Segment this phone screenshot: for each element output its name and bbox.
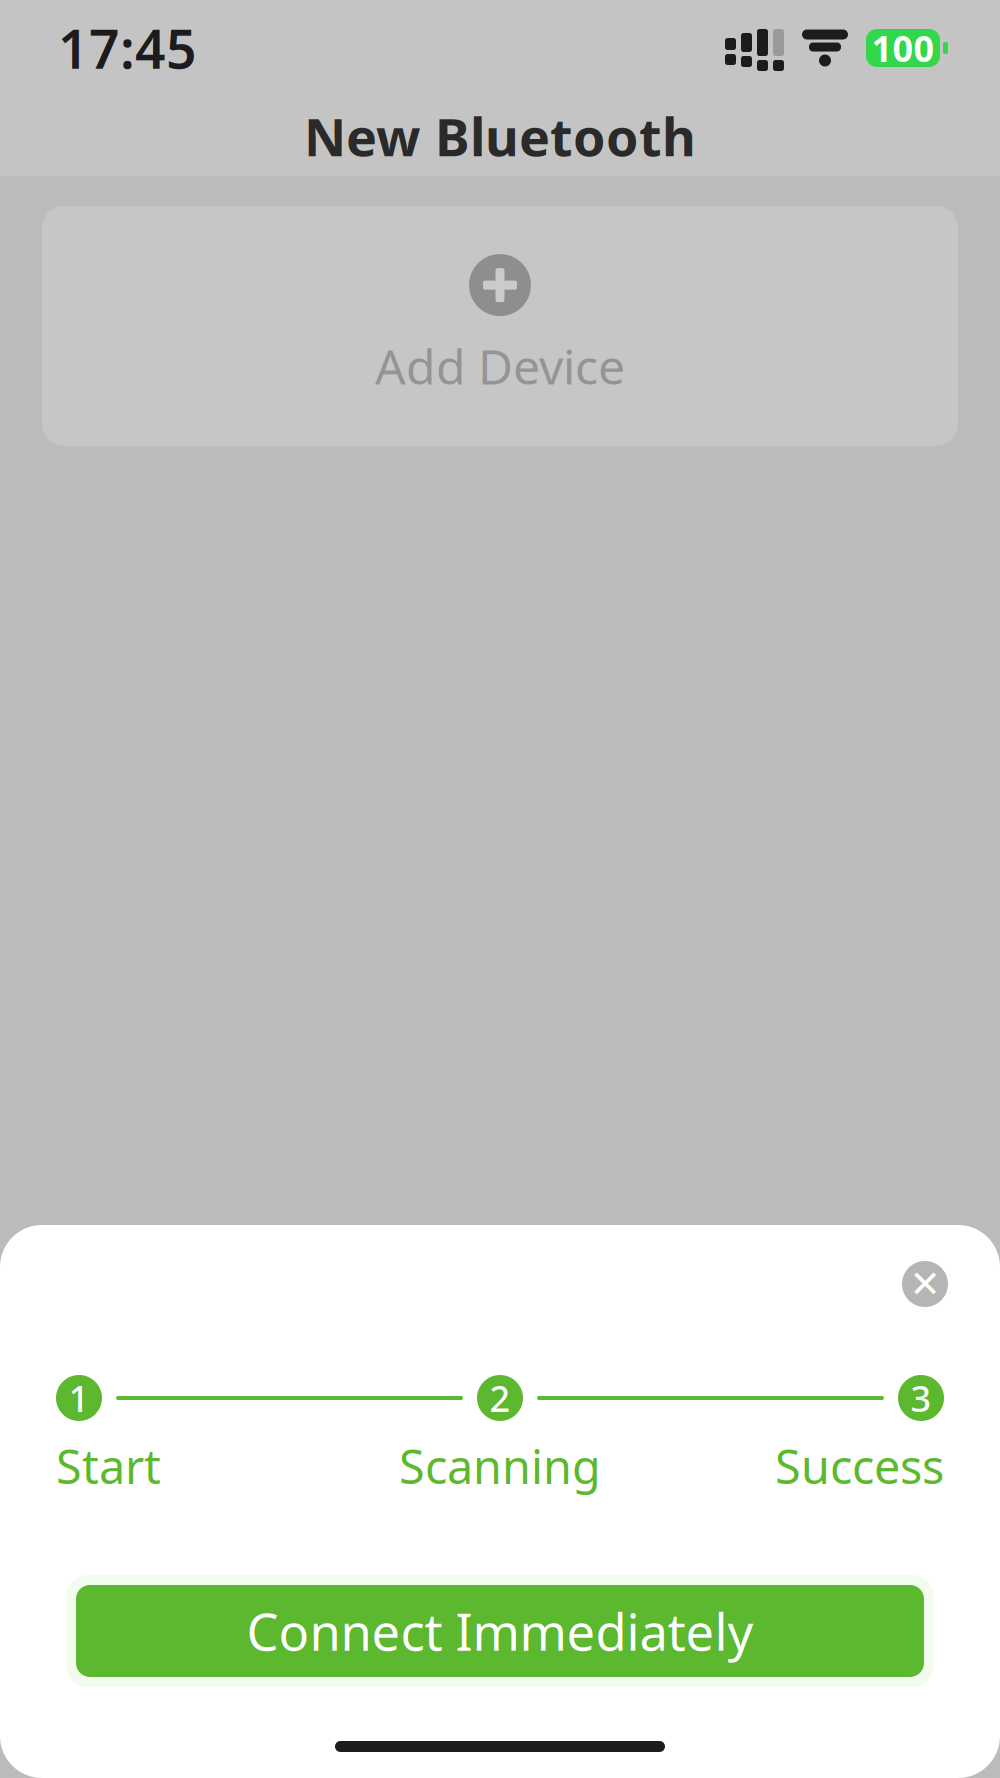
staticText: Success [775,1435,944,1497]
staticText: 1 [68,1374,89,1422]
staticText: Connect Immediately [246,1597,753,1665]
staticText: 2 [489,1374,510,1422]
staticText: New Bluetooth [304,101,696,171]
staticText: 100 [871,24,934,72]
staticText: ✕ [909,1263,940,1305]
staticText: Add Device [375,334,625,398]
staticText: Start [56,1435,161,1497]
staticText: Scanning [399,1435,601,1497]
button[interactable]: Add Device [42,206,958,446]
button[interactable]: Close [892,1251,958,1317]
staticText: 17:45 [58,13,197,83]
button[interactable]: Connect Immediately [66,1575,934,1687]
staticText: 3 [910,1374,931,1422]
